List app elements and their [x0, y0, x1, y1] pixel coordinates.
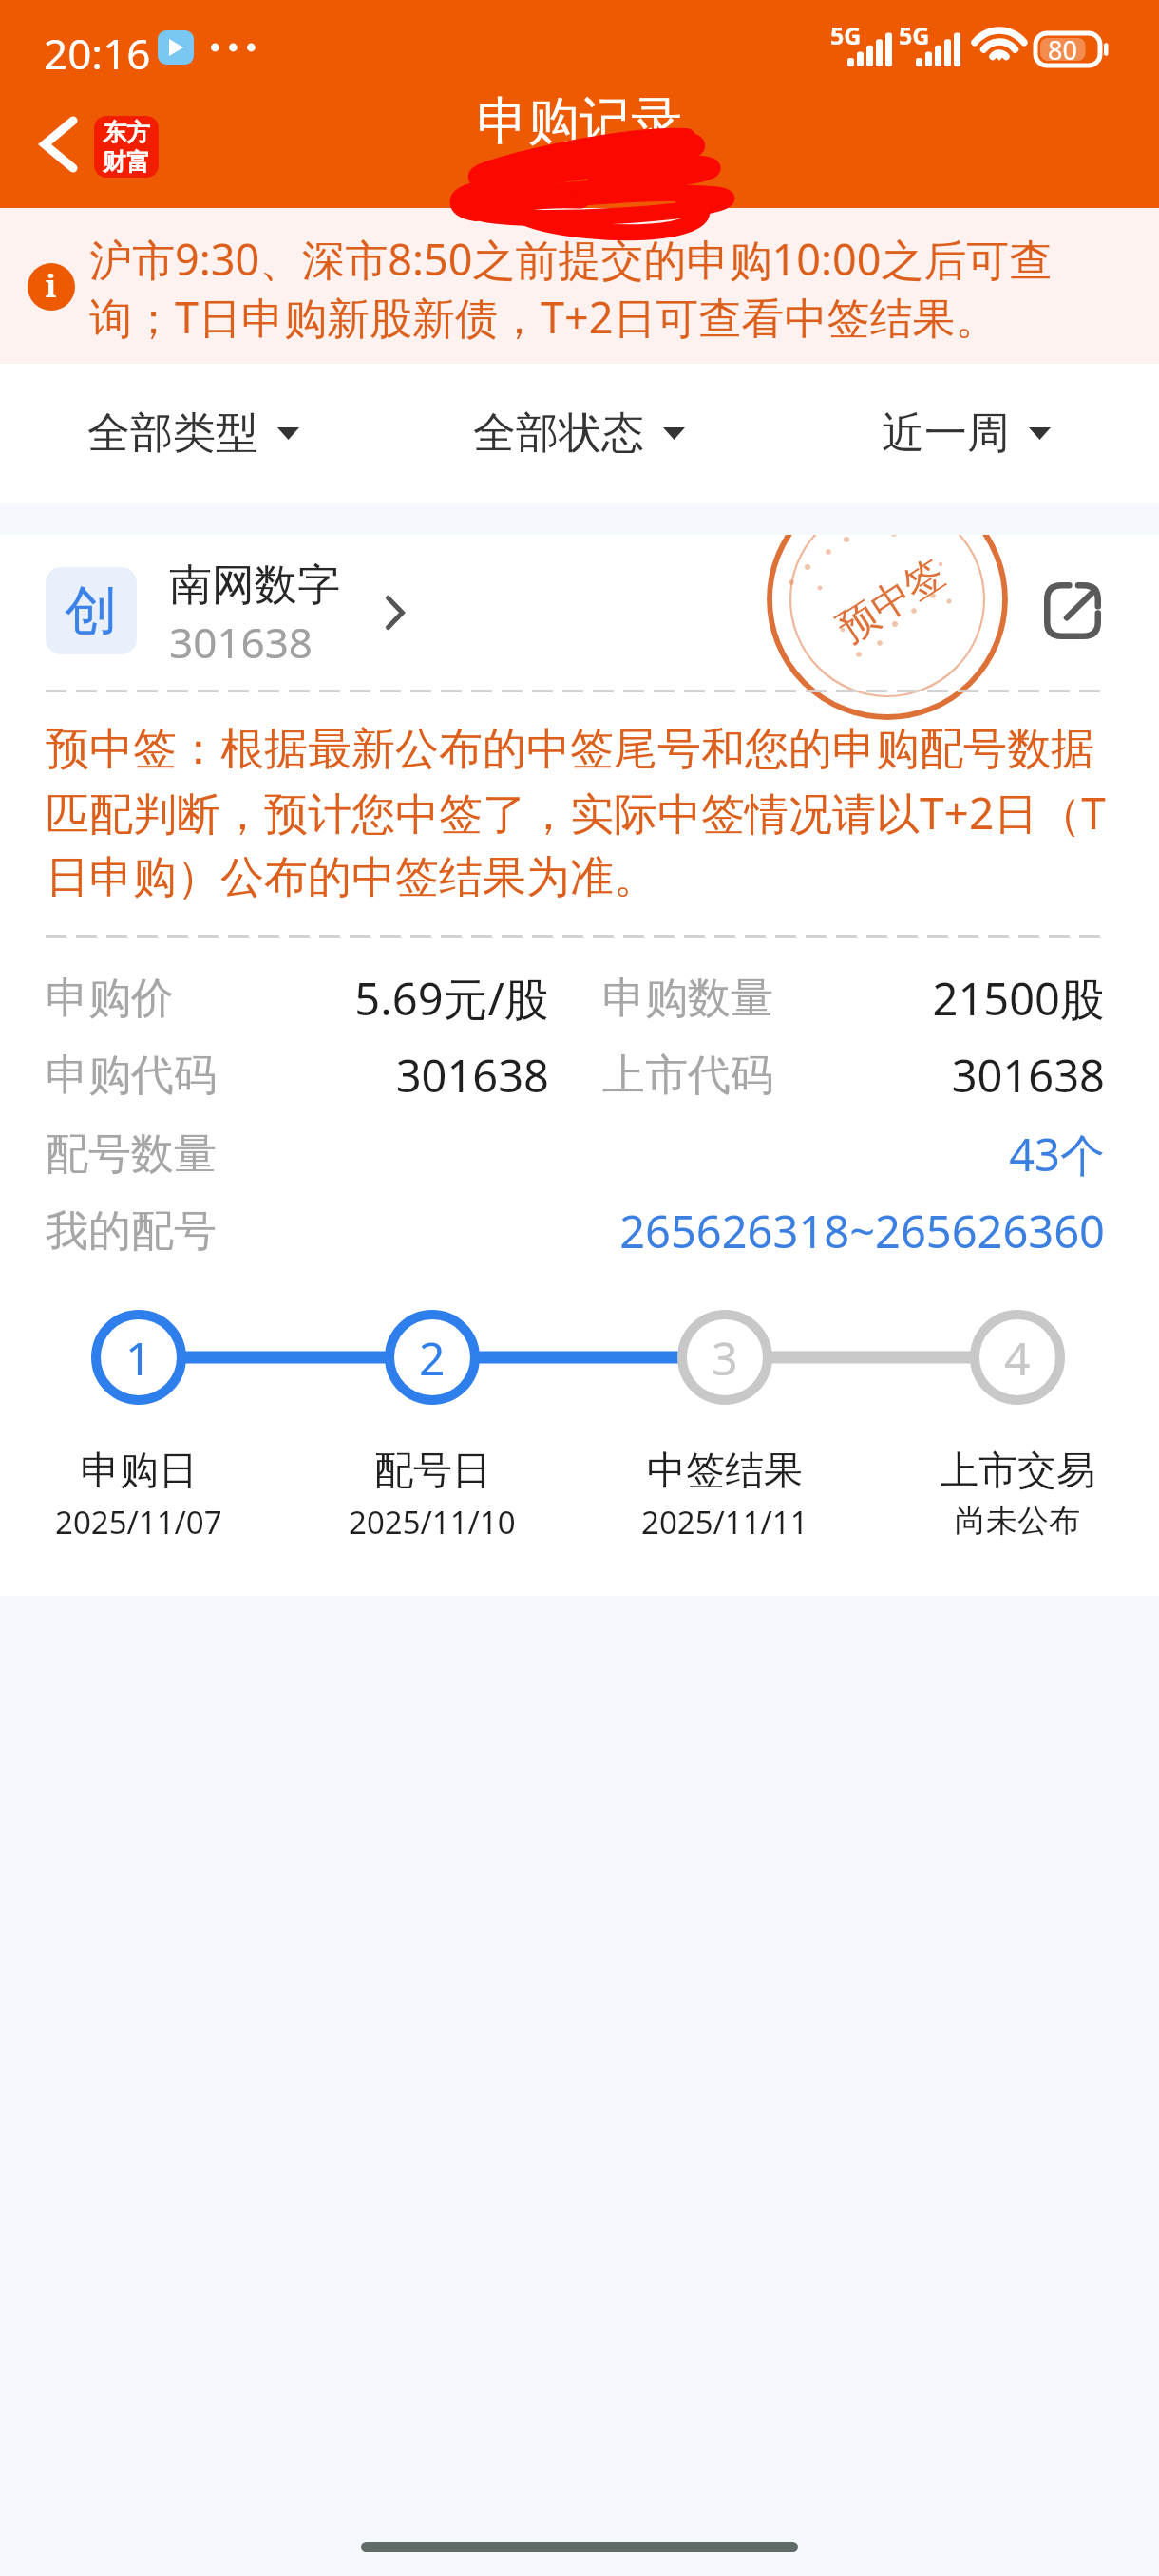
- staticText: i: [46, 265, 57, 307]
- button[interactable]: [34, 556, 414, 668]
- staticText: 申购代码: [46, 1049, 217, 1103]
- staticText: 尚未公布: [955, 1501, 1080, 1541]
- staticText: 301638: [46, 1045, 549, 1106]
- staticText: 5.69元/股: [46, 968, 549, 1029]
- staticText: 配号日: [374, 1447, 491, 1496]
- staticText: 5G: [899, 19, 930, 51]
- staticText: 近一周: [882, 407, 1010, 461]
- staticText: 5G: [830, 19, 862, 51]
- staticText: 20:16: [44, 25, 151, 82]
- staticText: 预中签: [829, 549, 954, 654]
- staticText: 301638: [602, 1045, 1105, 1106]
- staticText: 创: [65, 578, 118, 645]
- staticText: 2: [419, 1327, 446, 1389]
- staticText: 东方: [103, 118, 150, 147]
- staticText: 301638: [169, 614, 313, 671]
- staticText: 财富: [103, 147, 150, 177]
- staticText: 4: [1004, 1327, 1031, 1389]
- staticText: 21500股: [602, 968, 1105, 1029]
- staticText: 申购日: [81, 1447, 198, 1496]
- staticText: 南网数字: [169, 559, 340, 613]
- staticText: 预中签：根据最新公布的中签尾号和您的申购配号数据匹配判断，预计您中签了，实际中签…: [46, 722, 1114, 905]
- staticText: 上市交易: [940, 1447, 1095, 1496]
- staticText: 3: [712, 1327, 738, 1389]
- staticText: 配号数量: [46, 1127, 217, 1182]
- button[interactable]: 近一周: [772, 364, 1159, 503]
- staticText: 43个: [46, 1124, 1105, 1184]
- staticText: 2025/11/11: [641, 1501, 808, 1544]
- button[interactable]: 全部类型: [0, 364, 386, 503]
- staticText: 全部状态: [473, 407, 644, 461]
- button[interactable]: Open detail: [1035, 574, 1110, 648]
- staticText: 申购数量: [602, 972, 773, 1026]
- staticText: 1: [125, 1327, 152, 1389]
- staticText: 上市代码: [602, 1049, 773, 1103]
- staticText: 申购价: [46, 972, 174, 1026]
- staticText: 80: [1048, 32, 1077, 65]
- staticText: 2025/11/07: [55, 1501, 222, 1544]
- button[interactable]: 全部状态: [386, 364, 772, 503]
- staticText: 申购记录: [477, 89, 682, 154]
- staticText: 2025/11/10: [349, 1501, 516, 1544]
- staticText: 我的配号: [46, 1204, 217, 1259]
- staticText: 265626318~265626360: [46, 1201, 1105, 1261]
- staticText: 中签结果: [647, 1447, 803, 1496]
- staticText: 全部类型: [87, 407, 258, 461]
- staticText: 沪市9:30、深市8:50之前提交的申购10:00之后可查询；T日申购新股新债，…: [89, 230, 1098, 346]
- button[interactable]: Back: [23, 106, 95, 182]
